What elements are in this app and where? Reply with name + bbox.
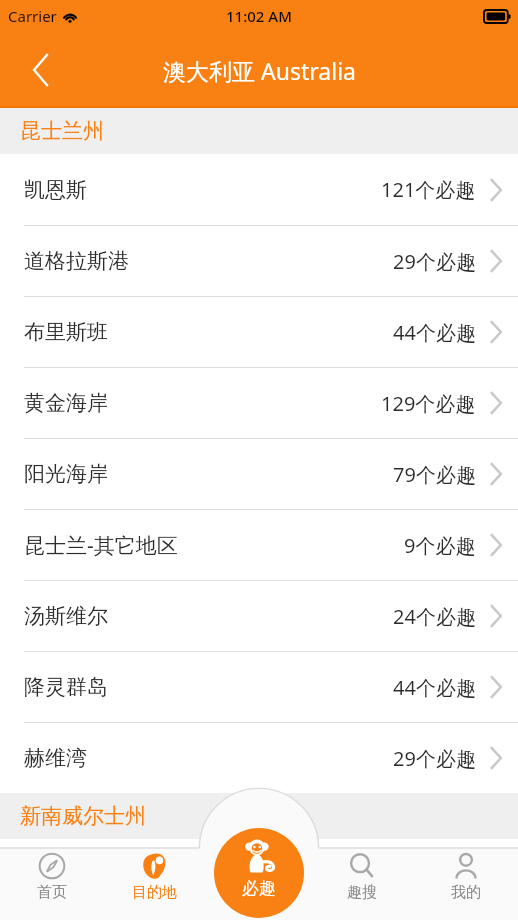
staticText: 129个必趣 [381,390,476,417]
button[interactable]: 昆士兰-其它地区 [0,510,518,580]
button[interactable]: 目的地 [103,828,206,920]
staticText: 新南威尔士州 [20,803,146,829]
button[interactable]: 阳光海岸 [0,439,518,509]
staticText: Carrier [8,6,57,26]
button[interactable]: Back [16,46,64,94]
staticText: 黄金海岸 [24,390,108,416]
button[interactable]: 首页 [0,828,103,920]
staticText: 趣搜 [347,883,377,902]
staticText: 11:02 AM [226,6,292,26]
button[interactable]: 我的 [414,828,518,920]
staticText: 澳大利亚 Australia [163,55,356,86]
staticText: 121个必趣 [381,176,476,203]
staticText: 道格拉斯港 [24,248,129,274]
button[interactable]: 赫维湾 [0,723,518,793]
staticText: 79个必趣 [393,461,476,488]
staticText: 我的 [451,883,481,902]
staticText: 赫维湾 [24,745,87,771]
staticText: 24个必趣 [393,603,476,630]
button[interactable]: 必趣 [214,828,304,918]
staticText: 44个必趣 [393,319,476,346]
staticText: 目的地 [132,883,177,902]
staticText: 布里斯班 [24,319,108,345]
staticText: 44个必趣 [393,674,476,701]
staticText: 必趣 [242,878,276,899]
staticText: 29个必趣 [393,745,476,772]
staticText: 汤斯维尔 [24,603,108,629]
staticText: 29个必趣 [393,248,476,275]
staticText: 9个必趣 [404,532,476,559]
staticText: 昆士兰州 [20,118,104,144]
button[interactable]: 汤斯维尔 [0,581,518,651]
staticText: 阳光海岸 [24,461,108,487]
staticText: 凯恩斯 [24,177,87,203]
button[interactable]: 道格拉斯港 [0,226,518,296]
staticText: 首页 [37,883,67,902]
button[interactable]: 降灵群岛 [0,652,518,722]
button[interactable]: 黄金海岸 [0,368,518,438]
button[interactable]: 凯恩斯 [0,154,518,225]
staticText: 降灵群岛 [24,674,108,700]
button[interactable]: 布里斯班 [0,297,518,367]
staticText: 昆士兰-其它地区 [24,531,178,560]
button[interactable]: 趣搜 [310,828,414,920]
